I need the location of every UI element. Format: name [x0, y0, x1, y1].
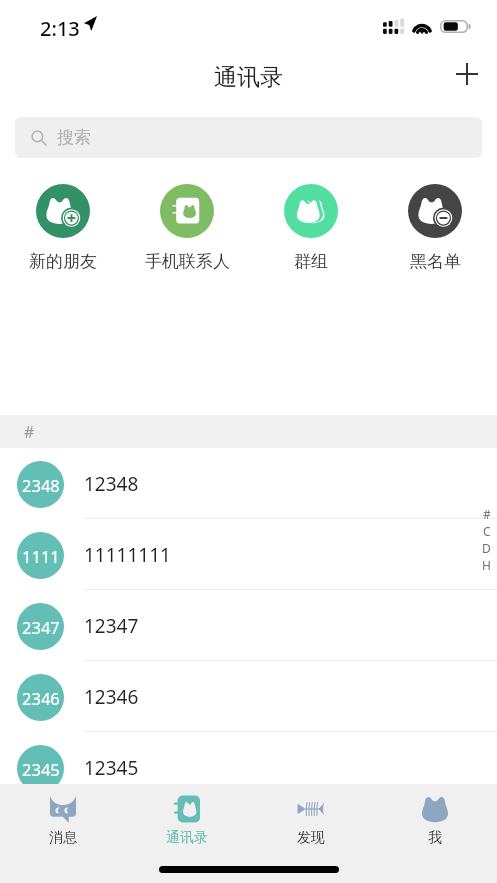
- staticText: 1111: [22, 545, 60, 567]
- staticText: 搜索: [57, 127, 91, 148]
- staticText: 我: [428, 829, 442, 847]
- staticText: 11111111: [84, 542, 171, 568]
- button[interactable]: 我: [373, 784, 497, 847]
- button[interactable]: Add: [447, 54, 487, 94]
- staticText: 12348: [84, 471, 139, 497]
- staticText: 黑名单: [410, 251, 461, 272]
- staticText: H: [482, 557, 491, 573]
- staticText: 新的朋友: [29, 251, 97, 272]
- button[interactable]: 2348: [0, 448, 497, 519]
- staticText: 2347: [22, 616, 60, 638]
- staticText: 消息: [49, 829, 77, 847]
- button[interactable]: 搜索: [15, 117, 482, 158]
- button[interactable]: 消息: [0, 784, 125, 847]
- button[interactable]: 2345: [0, 732, 497, 803]
- staticText: 手机联系人: [145, 251, 230, 272]
- staticText: C: [483, 523, 491, 539]
- button[interactable]: 群组: [249, 184, 373, 272]
- staticText: #: [483, 506, 491, 522]
- staticText: 2:13: [40, 15, 80, 42]
- staticText: 12347: [84, 613, 139, 639]
- button[interactable]: 新的朋友: [0, 184, 125, 272]
- staticText: 2348: [22, 474, 60, 496]
- staticText: 发现: [297, 829, 325, 847]
- staticText: 群组: [294, 251, 328, 272]
- staticText: D: [482, 540, 491, 556]
- staticText: 12346: [84, 684, 139, 710]
- staticText: 2346: [22, 687, 60, 709]
- staticText: #: [24, 421, 35, 443]
- button[interactable]: 手机联系人: [125, 184, 249, 272]
- staticText: 2345: [22, 758, 60, 780]
- staticText: 通讯录: [166, 829, 208, 847]
- staticText: 12345: [84, 755, 139, 781]
- button[interactable]: 2346: [0, 661, 497, 732]
- staticText: 通讯录: [214, 63, 283, 92]
- button[interactable]: 黑名单: [373, 184, 497, 272]
- button[interactable]: 发现: [249, 784, 373, 847]
- button[interactable]: 通讯录: [125, 784, 249, 847]
- button[interactable]: 2347: [0, 590, 497, 661]
- button[interactable]: 1111: [0, 519, 497, 590]
